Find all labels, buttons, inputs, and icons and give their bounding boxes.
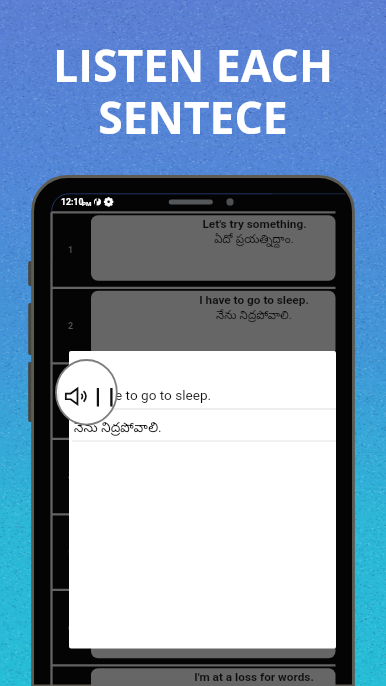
- staticText: SENTECE: [98, 86, 288, 147]
- staticText: నేను నిద్రపోవాలి.: [216, 308, 292, 325]
- staticText: 12:10: [61, 197, 84, 207]
- staticText: I'm at a loss for words.: [194, 670, 314, 684]
- staticText: 3: [68, 396, 74, 407]
- button[interactable]: 3: [52, 363, 336, 439]
- button[interactable]: Play sentence: [64, 382, 90, 404]
- button[interactable]: 4: [52, 439, 336, 515]
- staticText: 4: [68, 472, 74, 483]
- staticText: 6: [68, 623, 74, 634]
- button[interactable]: 1: [52, 212, 336, 288]
- staticText: e to go to sleep.: [115, 387, 212, 403]
- staticText: నేను నిద్రపోవాలి.: [74, 419, 162, 438]
- button[interactable]: 2: [52, 288, 336, 364]
- staticText: ఏదో ప్రయత్నిద్దాం.: [214, 232, 294, 249]
- staticText: LISTEN EACH: [53, 34, 333, 95]
- staticText: I have to go to sleep.: [199, 293, 309, 307]
- button[interactable]: 5: [52, 514, 336, 590]
- button[interactable]: 6: [52, 590, 336, 666]
- staticText: 2: [68, 321, 74, 332]
- staticText: PM: [82, 200, 92, 207]
- staticText: 1: [68, 245, 74, 256]
- staticText: Let's try something.: [202, 217, 307, 231]
- staticText: 5: [68, 547, 74, 558]
- button[interactable]: 7: [52, 665, 336, 686]
